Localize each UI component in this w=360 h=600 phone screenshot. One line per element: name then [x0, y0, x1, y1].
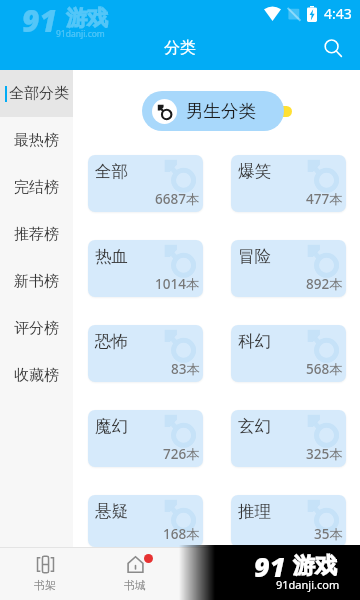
button[interactable]: 新书榜 — [0, 258, 73, 305]
button[interactable]: 男生分类 — [142, 91, 284, 131]
staticText: 最热榜 — [14, 131, 59, 150]
staticText: 168本 — [163, 525, 200, 543]
button[interactable]: 全部分类 — [0, 70, 73, 117]
button[interactable]: 最热榜 — [0, 117, 73, 164]
staticText: 4:43 — [324, 4, 352, 23]
button[interactable]: 评分榜 — [0, 305, 73, 352]
staticText: 书城 — [124, 578, 146, 592]
button[interactable]: 全部 — [88, 155, 203, 212]
staticText: 爆笑 — [238, 161, 271, 182]
staticText: 892本 — [306, 275, 343, 293]
staticText: 全部分类 — [9, 84, 69, 103]
button[interactable]: 热血 — [88, 240, 203, 297]
staticText: 魔幻 — [95, 416, 128, 437]
staticText: 悬疑 — [95, 501, 128, 522]
staticText: 568本 — [306, 360, 343, 378]
staticText: 91 — [254, 548, 286, 585]
staticText: 477本 — [306, 190, 343, 208]
staticText: 全部 — [95, 161, 128, 182]
staticText: 83本 — [171, 360, 200, 378]
button[interactable]: 推理 — [231, 495, 346, 547]
staticText: 推荐榜 — [14, 225, 59, 244]
staticText: 推理 — [238, 501, 271, 522]
button[interactable]: 科幻 — [231, 325, 346, 382]
staticText: 游戏 — [293, 552, 337, 580]
staticText: 91danji.com — [56, 28, 105, 40]
staticText: 35本 — [314, 525, 343, 543]
button[interactable]: 魔幻 — [88, 410, 203, 467]
staticText: 热血 — [95, 246, 128, 267]
button[interactable]: 分类 — [180, 547, 270, 600]
button[interactable]: 书架 — [0, 547, 90, 600]
button[interactable]: 冒险 — [231, 240, 346, 297]
button[interactable]: 爆笑 — [231, 155, 346, 212]
staticText: 恐怖 — [95, 331, 128, 352]
staticText: 书架 — [34, 578, 56, 592]
button[interactable]: 恐怖 — [88, 325, 203, 382]
staticText: 我的 — [304, 579, 326, 593]
button[interactable]: 推荐榜 — [0, 211, 73, 258]
button[interactable]: 书城 — [90, 547, 180, 600]
staticText: 726本 — [163, 445, 200, 463]
staticText: 完结榜 — [14, 178, 59, 197]
staticText: 科幻 — [238, 331, 271, 352]
staticText: 收藏榜 — [14, 366, 59, 385]
staticText: 91danji.com — [276, 577, 340, 592]
staticText: 91 — [22, 0, 57, 41]
button[interactable]: 玄幻 — [231, 410, 346, 467]
staticText: 玄幻 — [238, 416, 271, 437]
staticText: 游戏 — [66, 5, 108, 31]
button[interactable]: 完结榜 — [0, 164, 73, 211]
staticText: 新书榜 — [14, 272, 59, 291]
staticText: 1014本 — [155, 275, 200, 293]
staticText: 分类 — [164, 38, 196, 58]
button[interactable]: Search — [315, 30, 351, 66]
button[interactable]: 收藏榜 — [0, 352, 73, 399]
staticText: 评分榜 — [14, 319, 59, 338]
button[interactable]: 悬疑 — [88, 495, 203, 547]
staticText: 男生分类 — [186, 100, 256, 122]
button[interactable]: 我的 — [270, 547, 360, 600]
staticText: 6687本 — [155, 190, 200, 208]
staticText: 冒险 — [238, 246, 271, 267]
staticText: 325本 — [306, 445, 343, 463]
